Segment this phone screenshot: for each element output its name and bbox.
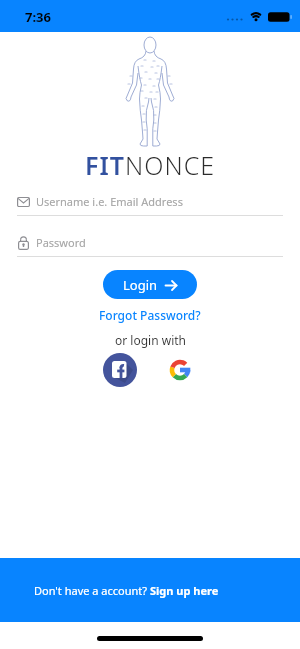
button[interactable]: Username i.e. Email Address xyxy=(17,194,283,216)
staticText: Sign up here xyxy=(150,583,219,598)
button[interactable]: Forgot Password? xyxy=(95,303,205,327)
button[interactable] xyxy=(167,357,193,383)
staticText: NONCE xyxy=(125,148,216,182)
staticText: or login with xyxy=(115,332,186,348)
staticText: 7:36 xyxy=(25,8,51,26)
staticText: Username i.e. Email Address xyxy=(36,194,183,209)
staticText: Don't have a account? xyxy=(34,583,150,598)
button[interactable]: Don't have a account? xyxy=(0,558,300,622)
button[interactable]: Login xyxy=(103,270,197,299)
staticText: Login xyxy=(123,276,158,294)
staticText: Password xyxy=(36,235,86,250)
staticText: FIT xyxy=(85,148,125,182)
staticText: Forgot Password? xyxy=(99,307,201,323)
button[interactable]: Password xyxy=(17,235,283,257)
button[interactable] xyxy=(103,353,137,387)
